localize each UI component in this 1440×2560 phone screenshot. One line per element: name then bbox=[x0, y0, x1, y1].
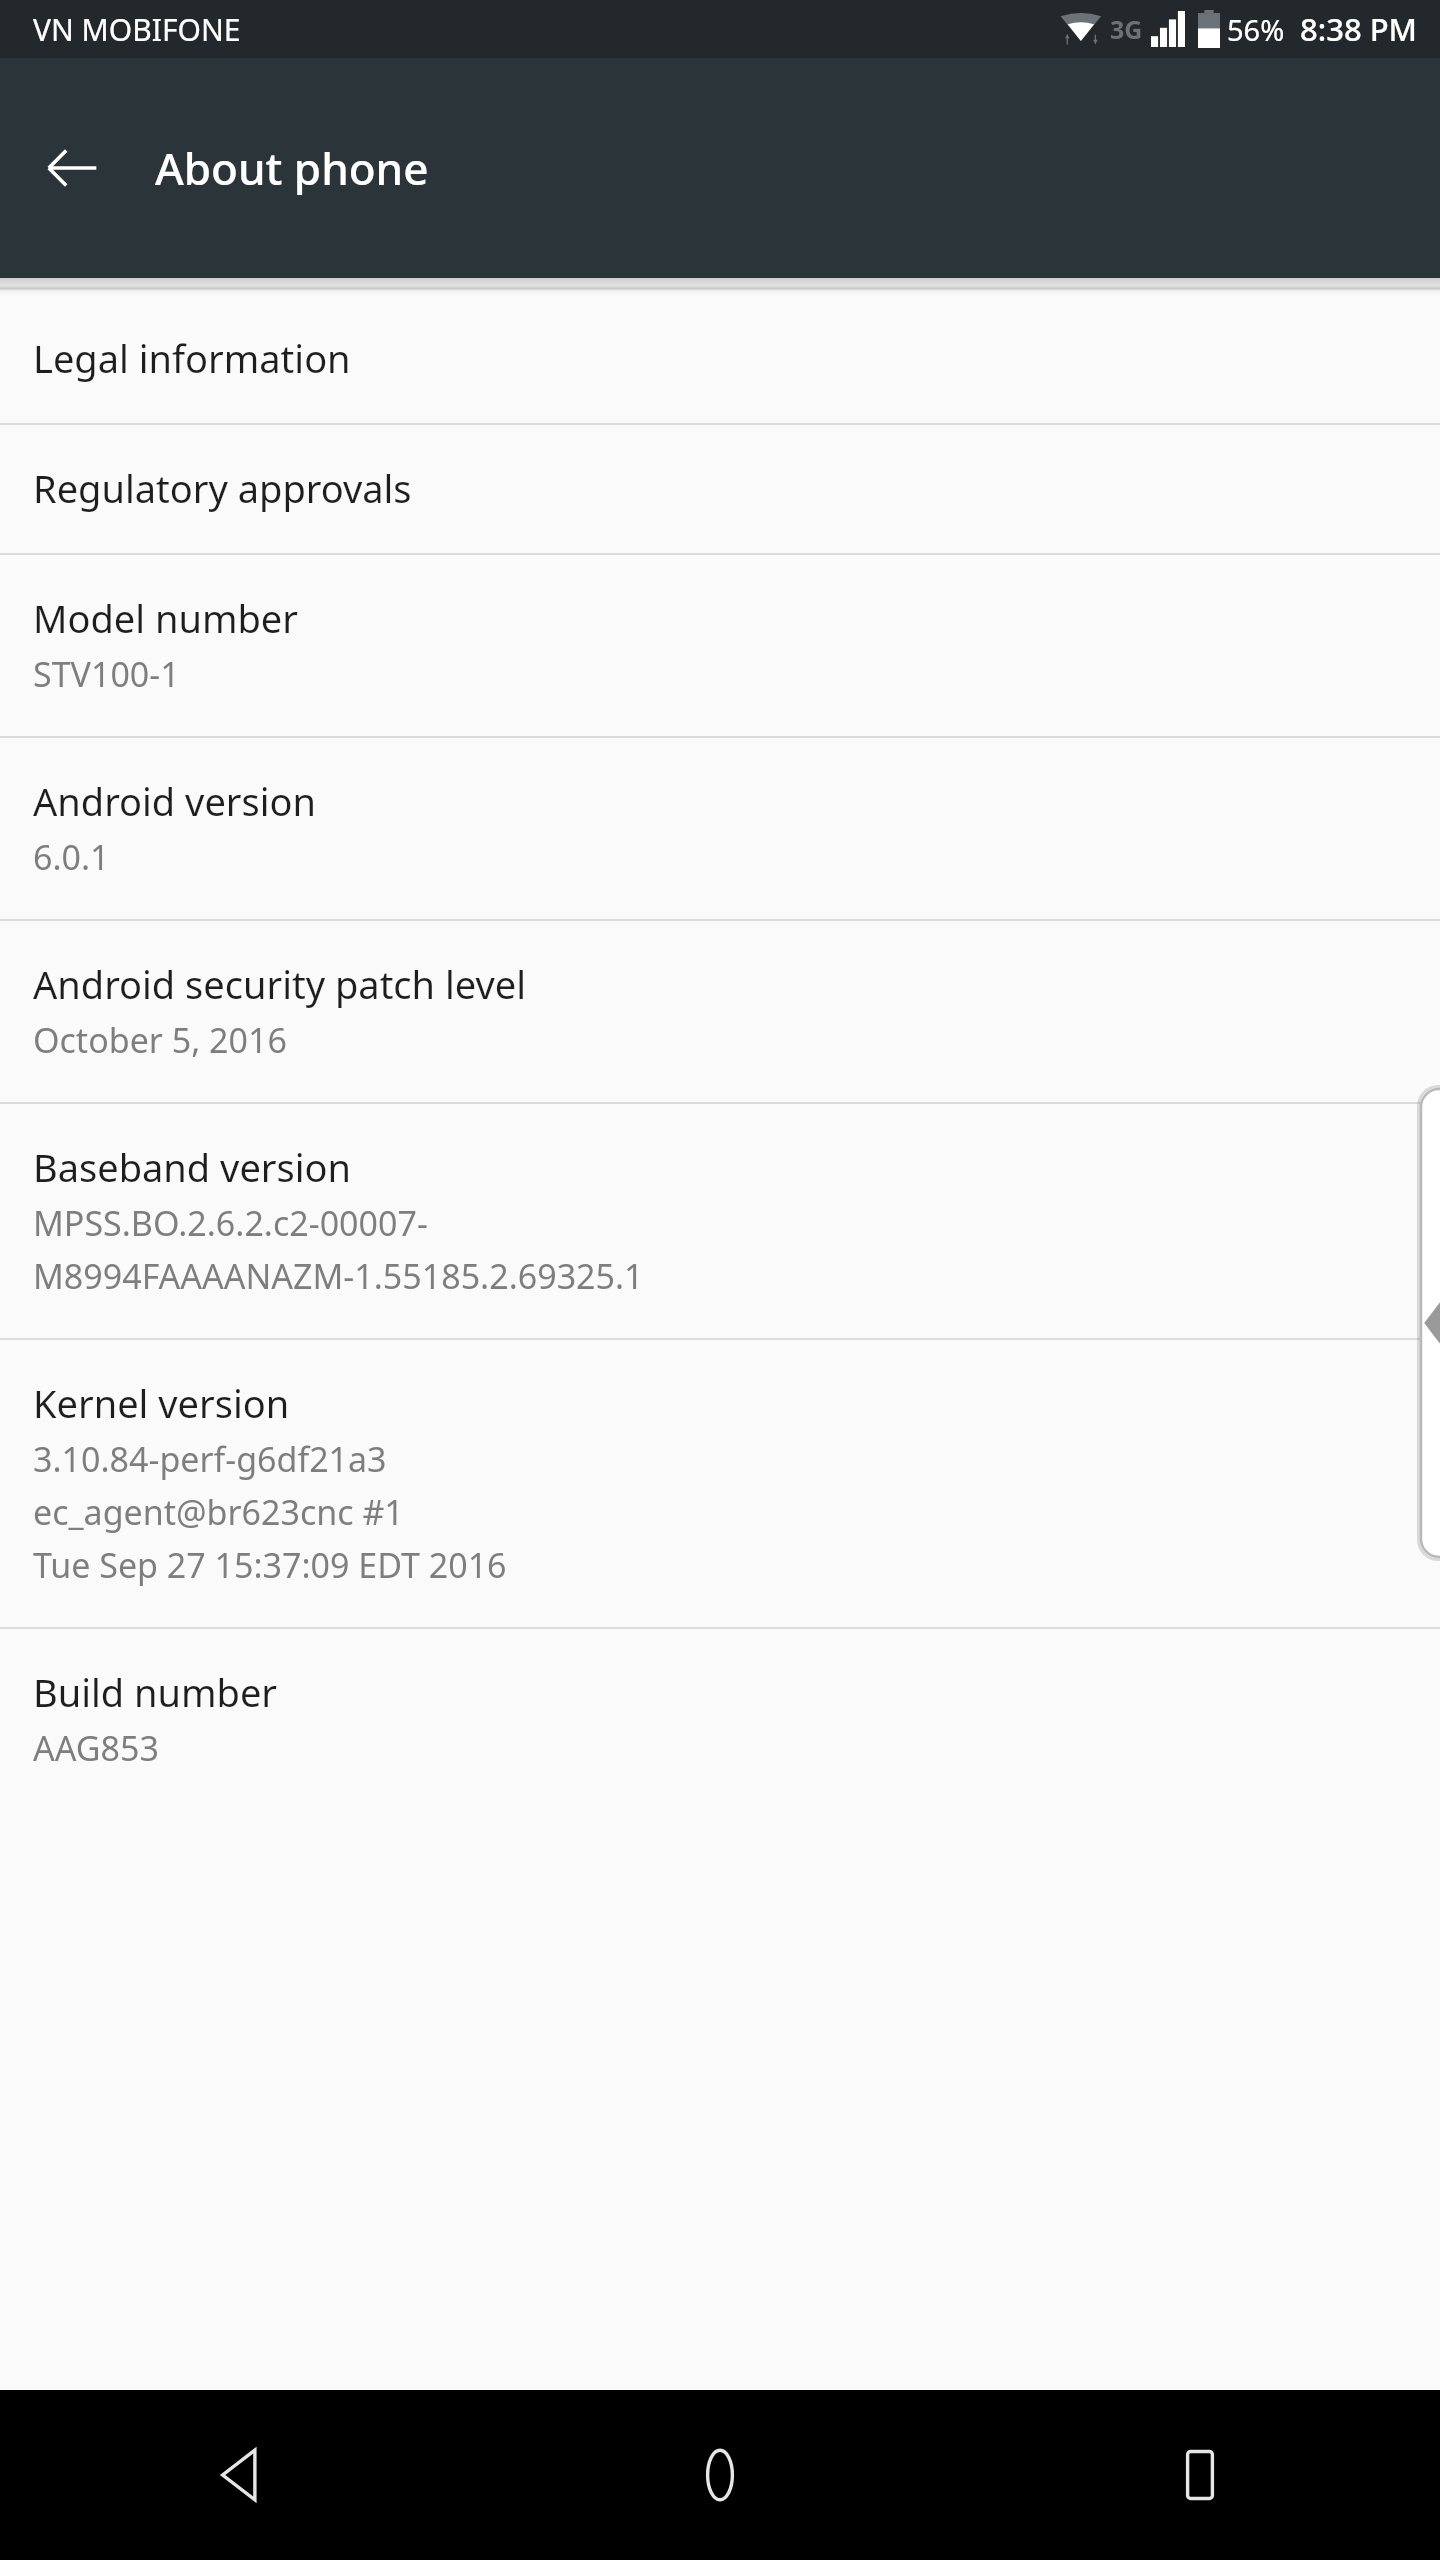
button[interactable]: Back bbox=[22, 118, 122, 218]
staticText: Model number bbox=[33, 592, 298, 644]
staticText: 6.0.1 bbox=[33, 834, 110, 880]
staticText: Regulatory approvals bbox=[33, 462, 412, 514]
staticText: VN MOBIFONE bbox=[33, 9, 241, 50]
button[interactable]: Android version bbox=[0, 738, 1440, 919]
staticText: Legal information bbox=[33, 332, 351, 384]
button[interactable]: Regulatory approvals bbox=[0, 425, 1440, 553]
staticText: M8994FAAAANAZM-1.55185.2.69325.1 bbox=[33, 1253, 644, 1299]
button[interactable]: Android security patch level bbox=[0, 921, 1440, 1102]
staticText: Tue Sep 27 15:37:09 EDT 2016 bbox=[33, 1542, 507, 1588]
staticText: About phone bbox=[155, 138, 429, 198]
button[interactable]: Model number bbox=[0, 555, 1440, 736]
button[interactable]: Recents bbox=[960, 2390, 1440, 2560]
button[interactable]: Open panel bbox=[1420, 1088, 1440, 1558]
button[interactable]: Home bbox=[480, 2390, 960, 2560]
staticText: Baseband version bbox=[33, 1141, 351, 1193]
button[interactable]: Build number bbox=[0, 1629, 1440, 1810]
button[interactable]: Baseband version bbox=[0, 1104, 1440, 1338]
button[interactable]: Back bbox=[0, 2390, 480, 2560]
button[interactable]: Kernel version bbox=[0, 1340, 1440, 1627]
staticText: ec_agent@br623cnc #1 bbox=[33, 1489, 404, 1535]
staticText: Android version bbox=[33, 775, 317, 827]
staticText: 3.10.84-perf-g6df21a3 bbox=[33, 1436, 387, 1482]
staticText: 56% bbox=[1227, 10, 1285, 49]
staticText: Android security patch level bbox=[33, 958, 526, 1010]
staticText: Kernel version bbox=[33, 1377, 290, 1429]
staticText: STV100-1 bbox=[33, 651, 180, 697]
button[interactable]: Legal information bbox=[0, 295, 1440, 423]
staticText: 8:38 PM bbox=[1300, 8, 1418, 50]
staticText: 3G bbox=[1110, 12, 1143, 46]
staticText: October 5, 2016 bbox=[33, 1017, 287, 1063]
staticText: AAG853 bbox=[33, 1725, 159, 1771]
staticText: Build number bbox=[33, 1666, 278, 1718]
staticText: MPSS.BO.2.6.2.c2-00007- bbox=[33, 1200, 428, 1246]
